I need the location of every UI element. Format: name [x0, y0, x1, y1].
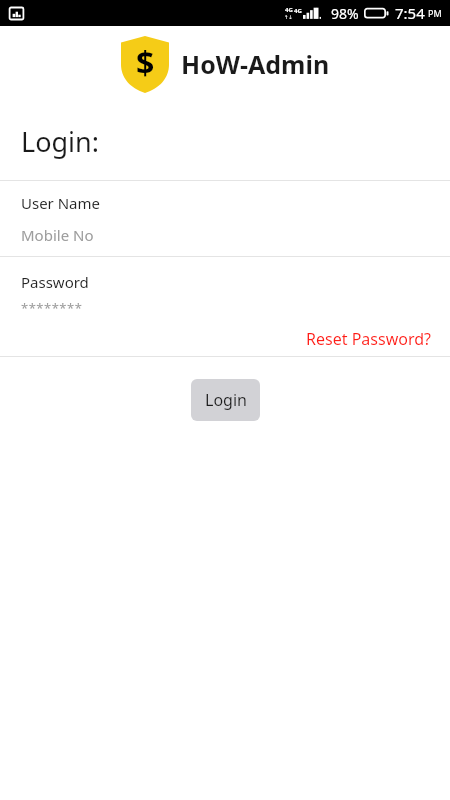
staticText: 4G — [285, 6, 293, 14]
button[interactable]: Password — [21, 272, 431, 317]
staticText: Password — [21, 272, 89, 292]
staticText: ↑↓ — [284, 14, 293, 20]
button[interactable]: Login — [191, 379, 260, 421]
staticText: HoW-Admin — [181, 47, 330, 81]
staticText: User Name — [21, 193, 101, 213]
button[interactable]: Reset Password? — [306, 328, 431, 350]
staticText: 7:54 — [395, 3, 425, 23]
staticText: Login — [205, 389, 247, 411]
staticText: ******** — [21, 299, 83, 317]
staticText: PM — [428, 7, 442, 19]
staticText: $ — [136, 41, 155, 85]
staticText: Mobile No — [21, 225, 94, 245]
staticText: 98% — [331, 4, 359, 23]
button[interactable]: User Name — [0, 181, 450, 256]
staticText: Login: — [21, 123, 99, 160]
staticText: Reset Password? — [306, 328, 431, 350]
staticText: 4G — [294, 7, 302, 15]
